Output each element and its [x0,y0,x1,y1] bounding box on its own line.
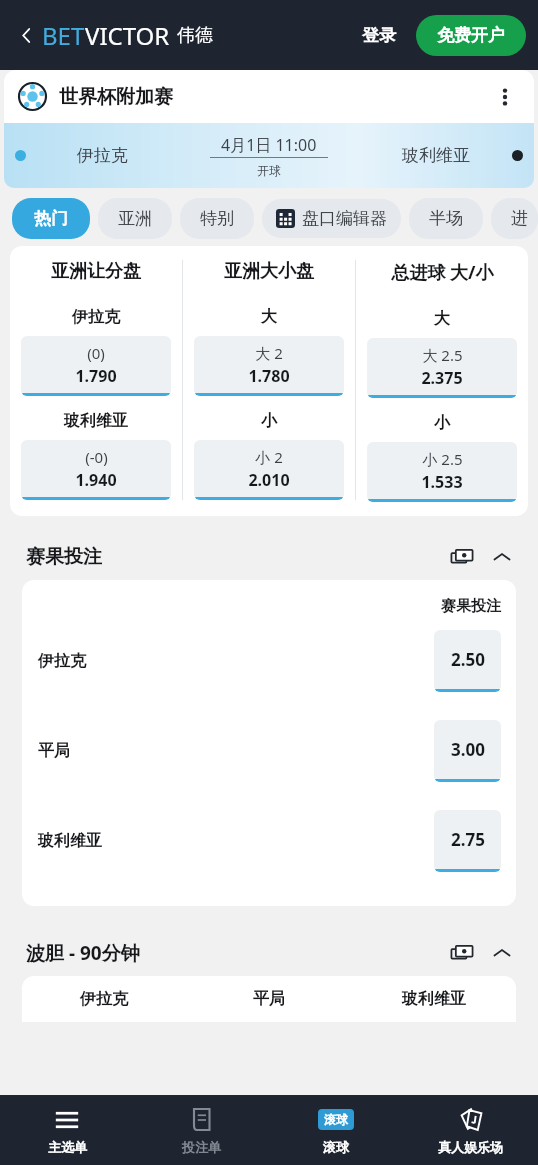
staticText: 1.780 [248,365,290,387]
button[interactable]: 亚洲 [98,198,172,239]
staticText: VICTOR [85,19,170,52]
button[interactable]: 登录 [356,17,402,54]
staticText: 平局 [253,989,285,1009]
staticText: 真人娱乐场 [438,1139,503,1155]
button[interactable]: Collapse section [488,939,516,967]
staticText: 伊拉克 [72,307,120,327]
staticText: 小 2.5 [422,449,463,469]
button[interactable]: 3.00 [434,720,501,782]
staticText: 登录 [362,25,396,46]
staticText: (0) [87,343,105,363]
staticText: 大 [434,309,450,329]
staticText: 伊拉克 [38,651,86,671]
staticText: 玻利维亚 [402,145,470,166]
button[interactable]: 半场 [409,198,483,239]
staticText: 小 2 [255,447,283,467]
button[interactable]: 波胆 - 90分钟 [0,928,538,976]
staticText: 4月1日 11:00 [221,134,317,156]
button[interactable]: 世界杯附加赛 [4,70,534,123]
staticText: 亚洲大小盘 [224,260,314,283]
staticText: 1.790 [75,365,117,387]
button[interactable]: (0) [21,336,171,396]
staticText: 滚球 [323,1139,349,1155]
staticText: 开球 [257,163,281,178]
staticText: 大 2.5 [422,345,463,365]
staticText: 世界杯附加赛 [59,85,173,109]
button[interactable]: 2.75 [434,810,501,872]
button[interactable]: 真人娱乐场 [403,1095,538,1165]
button[interactable]: 主选单 [0,1095,134,1165]
button[interactable]: (-0) [21,440,171,500]
staticText: 玻利维亚 [64,411,128,431]
button[interactable]: 盘口编辑器 [262,199,401,238]
staticText: 进 [511,208,518,229]
staticText: 伟德 [177,24,213,47]
button[interactable]: 伊拉克 [22,976,186,1022]
staticText: 亚洲 [118,208,152,229]
staticText: 玻利维亚 [38,831,102,851]
staticText: 赛果投注 [26,545,102,569]
button[interactable]: 特别 [180,198,254,239]
staticText: 赛果投注 [441,597,501,616]
button[interactable]: 大 2.5 [367,338,517,398]
staticText: 3.00 [451,738,485,761]
button[interactable]: 进 [491,198,538,239]
staticText: 伊拉克 [77,145,128,166]
button[interactable]: 滚球 [268,1095,403,1165]
staticText: 半场 [429,208,463,229]
button[interactable]: 小 2.5 [367,442,517,502]
staticText: 大 [261,307,277,327]
staticText: 亚洲让分盘 [51,260,141,283]
button[interactable]: 平局 [186,976,351,1022]
staticText: 小 [261,411,277,431]
button[interactable]: Collapse section [488,543,516,571]
staticText: 总进球 大/小 [391,260,494,285]
staticText: 玻利维亚 [402,989,466,1009]
button[interactable]: 伊拉克 [4,123,534,188]
staticText: 免费开户 [437,25,505,46]
staticText: 特别 [200,208,234,229]
button[interactable]: 热门 [12,198,90,239]
staticText: 投注单 [182,1139,221,1155]
staticText: 盘口编辑器 [302,208,387,229]
button[interactable]: 赛果投注 [0,532,538,580]
staticText: 伊拉克 [80,989,128,1009]
staticText: 小 [434,413,450,433]
staticText: 1.940 [75,469,117,491]
button[interactable]: Cash out [447,938,477,968]
staticText: (-0) [85,447,108,467]
button[interactable]: Cash out [447,542,477,572]
button[interactable]: Back [12,21,40,49]
staticText: 大 2 [255,343,283,363]
button[interactable]: 2.50 [434,630,501,692]
staticText: 1.533 [421,471,463,493]
button[interactable]: 大 2 [194,336,344,396]
staticText: 热门 [34,208,68,229]
button[interactable]: 投注单 [134,1095,268,1165]
button[interactable]: 免费开户 [416,15,526,56]
staticText: 波胆 - 90分钟 [26,940,140,966]
staticText: 2.75 [451,828,485,851]
staticText: 平局 [38,741,70,761]
staticText: BET [42,19,85,52]
button[interactable]: 小 2 [194,440,344,500]
staticText: 滚球 [324,1112,348,1127]
staticText: 2.375 [421,367,463,389]
button[interactable]: More options [490,82,520,112]
staticText: 2.50 [451,648,485,671]
button[interactable]: 玻利维亚 [351,976,516,1022]
staticText: 主选单 [48,1139,87,1155]
staticText: 2.010 [248,469,290,491]
